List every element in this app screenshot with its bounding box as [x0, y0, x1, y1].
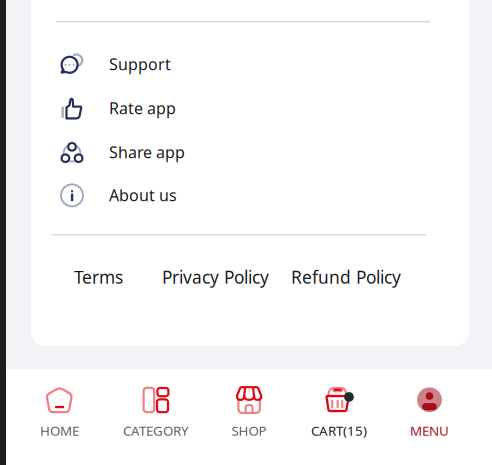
staticText: Refund Policy	[291, 265, 401, 288]
staticText: SHOP	[231, 422, 266, 439]
button[interactable]: Rate app	[31, 86, 469, 130]
staticText: Rate app	[109, 97, 176, 119]
button[interactable]: Privacy Policy	[162, 264, 270, 290]
staticText: About us	[109, 184, 177, 206]
staticText: CART(15)	[311, 422, 367, 439]
button[interactable]: HOME	[11, 387, 107, 438]
button[interactable]: About us	[31, 173, 469, 217]
button[interactable]: Support	[31, 42, 469, 86]
button[interactable]: CART(15)	[291, 387, 387, 438]
staticText: Support	[109, 53, 171, 75]
button[interactable]: Refund Policy	[291, 264, 398, 290]
staticText: HOME	[40, 422, 79, 439]
button[interactable]: CATEGORY	[108, 387, 204, 438]
staticText: Share app	[109, 141, 185, 163]
staticText: MENU	[410, 422, 449, 439]
button[interactable]: MENU	[381, 387, 477, 438]
button[interactable]: Terms	[74, 264, 122, 290]
staticText: CATEGORY	[123, 422, 189, 439]
button[interactable]: Share app	[31, 130, 469, 174]
button[interactable]: SHOP	[201, 387, 297, 438]
staticText: Terms	[74, 265, 123, 288]
staticText: Privacy Policy	[162, 265, 269, 288]
